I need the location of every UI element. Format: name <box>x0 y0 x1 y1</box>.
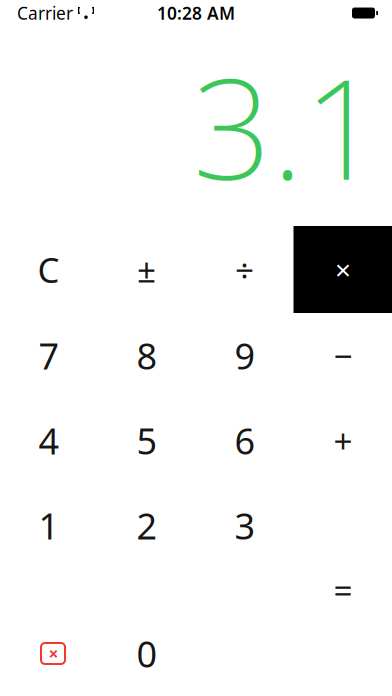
staticText: × <box>335 251 351 288</box>
button[interactable]: − <box>294 313 392 398</box>
staticText: C <box>37 246 59 292</box>
button[interactable]: 4 <box>0 398 98 483</box>
staticText: 4 <box>38 417 59 464</box>
staticText: ± <box>137 247 156 292</box>
staticText: 2 <box>136 502 157 549</box>
staticText: 3.1 <box>192 34 382 218</box>
staticText: 5 <box>136 417 157 464</box>
button[interactable]: Multiply <box>293 226 392 313</box>
staticText: 9 <box>234 332 255 379</box>
staticText: 0 <box>136 630 157 677</box>
staticText: − <box>333 333 352 378</box>
button[interactable]: C <box>0 227 97 312</box>
staticText: Carrier <box>17 1 73 24</box>
button[interactable]: 0 <box>98 611 196 696</box>
button[interactable]: 8 <box>98 313 196 398</box>
staticText: × <box>48 642 58 665</box>
staticText: 10:28 AM <box>157 1 235 24</box>
staticText: 1 <box>38 502 59 549</box>
button[interactable]: 1 <box>0 483 98 568</box>
button[interactable]: 5 <box>98 398 196 483</box>
button[interactable]: 6 <box>196 398 294 483</box>
button[interactable]: = <box>294 568 392 611</box>
staticText: 3 <box>234 502 255 549</box>
staticText: + <box>333 418 352 463</box>
staticText: 7 <box>38 332 59 379</box>
button[interactable]: ÷ <box>195 227 293 312</box>
button[interactable]: 3 <box>196 483 294 568</box>
staticText: 8 <box>136 332 157 379</box>
staticText: ÷ <box>235 247 254 292</box>
button[interactable]: ± <box>97 227 195 312</box>
staticText: 6 <box>234 417 255 464</box>
button[interactable]: Delete <box>0 611 98 696</box>
button[interactable]: + <box>294 398 392 483</box>
button[interactable]: 2 <box>98 483 196 568</box>
staticText: = <box>333 567 352 612</box>
button[interactable]: 7 <box>0 313 98 398</box>
button[interactable]: 9 <box>196 313 294 398</box>
